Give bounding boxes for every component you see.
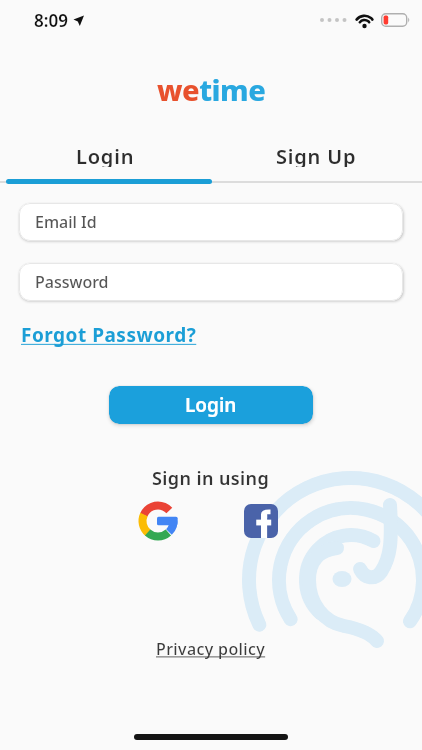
button[interactable]: Forgot Password? bbox=[21, 322, 197, 348]
button[interactable] bbox=[138, 501, 178, 541]
staticText: Email Id bbox=[35, 211, 97, 233]
button[interactable]: Login bbox=[0, 143, 211, 167]
button[interactable]: Email Id bbox=[19, 203, 403, 241]
staticText: Password bbox=[35, 271, 109, 293]
button[interactable] bbox=[244, 504, 278, 538]
staticText: 8:09 bbox=[34, 9, 68, 32]
staticText: Sign Up bbox=[276, 143, 357, 167]
button[interactable]: Login bbox=[109, 386, 313, 424]
staticText: Login bbox=[185, 392, 237, 418]
staticText: Sign in using bbox=[152, 466, 270, 491]
button[interactable]: Password bbox=[19, 263, 403, 301]
button[interactable]: Privacy policy bbox=[156, 638, 266, 660]
button[interactable]: Sign Up bbox=[211, 143, 422, 167]
staticText: Login bbox=[76, 143, 135, 167]
staticText: wetime bbox=[157, 70, 266, 109]
